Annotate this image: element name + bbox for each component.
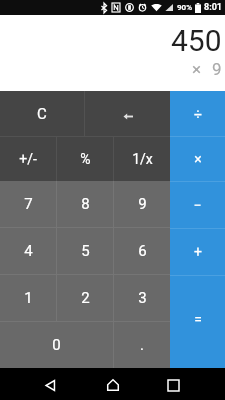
staticText: 5 (81, 242, 90, 260)
staticText: 450 (171, 23, 222, 58)
staticText: 1/x (132, 151, 153, 167)
button[interactable]: × (170, 137, 225, 181)
staticText: ÷ (194, 106, 202, 122)
button[interactable]: +/- (0, 137, 56, 181)
staticText: 2 (81, 289, 90, 307)
staticText: = (194, 311, 202, 327)
button[interactable]: ÷ (170, 91, 225, 136)
staticText: 7 (24, 195, 33, 213)
staticText: 0 (52, 336, 61, 354)
button[interactable]: 6 (114, 228, 170, 274)
staticText: C (37, 105, 47, 123)
staticText: 1 (24, 289, 33, 307)
button[interactable]: Backspace (85, 91, 170, 136)
button[interactable]: 0 (0, 322, 113, 368)
button[interactable]: Back (34, 368, 66, 400)
button[interactable]: 1 (0, 275, 56, 321)
staticText: × (194, 151, 202, 167)
staticText: 8:01 (204, 2, 223, 13)
staticText: % (80, 151, 91, 167)
button[interactable]: C (0, 91, 84, 136)
staticText: 90% (177, 3, 193, 12)
staticText: − (193, 197, 202, 213)
staticText: 6 (138, 242, 147, 260)
button[interactable]: 1/x (114, 137, 170, 181)
button[interactable]: + (170, 229, 225, 275)
staticText: 9 (212, 59, 222, 79)
button[interactable]: Recent apps (157, 368, 189, 400)
button[interactable]: 8 (57, 181, 113, 227)
staticText: 9 (138, 195, 147, 213)
staticText: + (194, 244, 202, 260)
button[interactable]: = (170, 276, 225, 368)
button[interactable]: Home (97, 368, 129, 400)
button[interactable]: % (57, 137, 113, 181)
button[interactable]: − (170, 182, 225, 228)
button[interactable]: 2 (57, 275, 113, 321)
button[interactable]: 9 (114, 181, 170, 227)
button[interactable]: 5 (57, 228, 113, 274)
button[interactable]: . (114, 322, 170, 368)
button[interactable]: 3 (114, 275, 170, 321)
staticText: 8 (81, 195, 90, 213)
staticText: 3 (138, 289, 147, 307)
button[interactable]: 7 (0, 181, 56, 227)
button[interactable]: 4 (0, 228, 56, 274)
staticText: . (140, 336, 144, 354)
staticText: × (192, 59, 202, 79)
staticText: 4 (24, 242, 33, 260)
staticText: +/- (19, 151, 37, 167)
